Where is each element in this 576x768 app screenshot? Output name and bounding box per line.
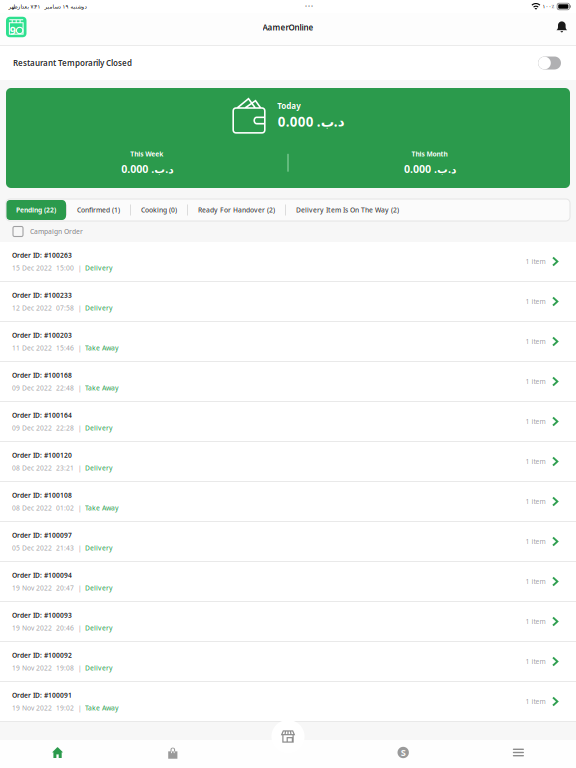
staticText: 1 item: [525, 537, 545, 546]
staticText: 1 item: [525, 417, 545, 426]
staticText: S: [401, 746, 406, 759]
staticText: 08 Dec 2022 01:02 |: [12, 503, 82, 512]
staticText: 1 item: [525, 297, 545, 306]
button[interactable]: Order ID: #100263: [0, 242, 576, 282]
button[interactable]: Order ID: #100203: [0, 322, 576, 362]
button[interactable]: Ready For Handover (2): [188, 200, 285, 220]
staticText: Today: [277, 101, 301, 111]
staticText: Confirmed (1): [77, 206, 120, 214]
staticText: Delivery: [85, 583, 113, 592]
staticText: This Month: [411, 149, 447, 158]
staticText: Order ID: #100263: [12, 251, 72, 259]
button[interactable]: Order ID: #100108: [0, 482, 576, 522]
staticText: Order ID: #100164: [12, 411, 72, 419]
staticText: 19 Nov 2022 20:47 |: [12, 583, 82, 592]
staticText: Order ID: #100168: [12, 371, 72, 379]
staticText: ۱۰۰٪: [542, 3, 554, 10]
button[interactable]: Home: [0, 740, 115, 768]
staticText: Take Away: [85, 503, 119, 512]
staticText: Delivery: [85, 663, 113, 672]
staticText: 19 Nov 2022 19:08 |: [12, 663, 82, 672]
staticText: 09 Dec 2022 22:28 |: [12, 423, 82, 432]
staticText: 08 Dec 2022 23:21 |: [12, 463, 82, 472]
staticText: دوشنبه ۱۹ دسامبر ۷:۴۱ بعدازظهر: [8, 3, 86, 10]
button[interactable]: Campaign Order: [0, 221, 576, 242]
staticText: 1 item: [525, 457, 545, 466]
staticText: Restaurant Temporarily Closed: [13, 58, 132, 68]
staticText: Order ID: #100233: [12, 291, 72, 299]
button[interactable]: Order ID: #100233: [0, 282, 576, 322]
button[interactable]: Order ID: #100091: [0, 682, 576, 722]
staticText: 1 item: [525, 377, 545, 386]
staticText: 05 Dec 2022 21:43 |: [12, 543, 82, 552]
staticText: د.ب. 0.000: [403, 162, 455, 176]
button[interactable]: Order ID: #100164: [0, 402, 576, 442]
staticText: Order ID: #100094: [12, 571, 72, 579]
button[interactable]: Cooking (0): [131, 200, 187, 220]
staticText: 09 Dec 2022 22:48 |: [12, 383, 82, 392]
button[interactable]: Order ID: #100097: [0, 522, 576, 562]
button[interactable]: Notifications: [547, 13, 576, 45]
staticText: Delivery: [85, 463, 113, 472]
staticText: 15 Dec 2022 15:00 |: [12, 263, 82, 272]
button[interactable]: Store profile: [0, 13, 35, 45]
staticText: Order ID: #100091: [12, 691, 72, 699]
staticText: This Week: [130, 149, 163, 158]
staticText: Take Away: [85, 343, 119, 352]
button[interactable]: Earnings: [346, 740, 461, 768]
staticText: 1 item: [525, 697, 545, 706]
staticText: Order ID: #100097: [12, 531, 72, 539]
staticText: Take Away: [85, 703, 119, 712]
staticText: Delivery Item Is On The Way (2): [296, 206, 399, 214]
staticText: Pending (22): [16, 206, 56, 214]
staticText: Take Away: [85, 383, 119, 392]
staticText: 19 Nov 2022 19:02 |: [12, 703, 82, 712]
staticText: 19 Nov 2022 20:46 |: [12, 623, 82, 632]
button[interactable]: Store: [271, 720, 304, 753]
staticText: 11 Dec 2022 15:46 |: [12, 343, 82, 352]
button[interactable]: Delivery Item Is On The Way (2): [286, 200, 409, 220]
button[interactable]: More: [461, 740, 576, 768]
button[interactable]: Order ID: #100094: [0, 562, 576, 602]
staticText: Campaign Order: [30, 227, 83, 236]
button[interactable]: Order ID: #100093: [0, 602, 576, 642]
staticText: 1 item: [525, 337, 545, 346]
staticText: 1 item: [525, 577, 545, 586]
staticText: د.ب. 0.000: [121, 162, 173, 176]
staticText: Delivery: [85, 543, 113, 552]
staticText: Order ID: #100093: [12, 611, 72, 619]
button[interactable]: Order ID: #100168: [0, 362, 576, 402]
staticText: Order ID: #100120: [12, 451, 72, 459]
staticText: Delivery: [85, 303, 113, 312]
staticText: 1 item: [525, 257, 545, 266]
staticText: Cooking (0): [141, 206, 177, 214]
staticText: Order ID: #100108: [12, 491, 72, 499]
button[interactable]: Restaurant Temporarily Closed: [533, 50, 566, 75]
staticText: Ready For Handover (2): [198, 206, 275, 214]
staticText: Order ID: #100203: [12, 331, 72, 339]
staticText: 1 item: [525, 497, 545, 506]
button[interactable]: Order ID: #100120: [0, 442, 576, 482]
staticText: Delivery: [85, 263, 113, 272]
staticText: Delivery: [85, 623, 113, 632]
staticText: AamerOnline: [262, 22, 313, 33]
staticText: د.ب. 0.000: [277, 113, 344, 130]
staticText: 12 Dec 2022 07:58 |: [12, 303, 82, 312]
button[interactable]: Store: [230, 740, 346, 768]
button[interactable]: Orders: [115, 740, 230, 768]
staticText: • • •: [305, 3, 313, 10]
button[interactable]: Confirmed (1): [67, 200, 130, 220]
staticText: 1 item: [525, 657, 545, 666]
button[interactable]: Order ID: #100092: [0, 642, 576, 682]
staticText: 9: [10, 23, 16, 38]
button[interactable]: Pending (22): [6, 200, 66, 220]
staticText: Order ID: #100092: [12, 651, 72, 659]
staticText: 1 item: [525, 617, 545, 626]
staticText: Delivery: [85, 423, 113, 432]
